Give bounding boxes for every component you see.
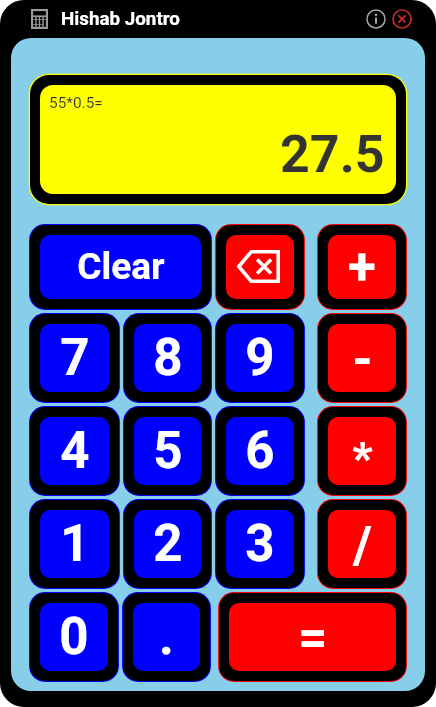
staticText: 27.5 [280, 124, 385, 185]
staticText: 8 [153, 328, 183, 388]
staticText: 6 [245, 421, 275, 481]
staticText: / [353, 516, 372, 576]
button[interactable]: 9 [226, 324, 294, 392]
staticText: 4 [60, 421, 90, 481]
staticText: 1 [60, 514, 90, 574]
staticText: . [159, 607, 174, 667]
button[interactable]: * [328, 417, 396, 485]
button[interactable]: 0 [40, 603, 108, 671]
staticText: 55*0.5= [49, 94, 103, 112]
button[interactable]: 1 [40, 510, 109, 578]
button[interactable]: 4 [40, 417, 109, 485]
staticText: = [298, 608, 328, 668]
button[interactable]: 2 [134, 510, 201, 578]
staticText: 5 [153, 421, 183, 481]
button[interactable]: 5 [134, 417, 201, 485]
staticText: Clear [77, 245, 165, 288]
button[interactable]: + [328, 235, 396, 299]
button[interactable]: / [328, 510, 396, 578]
staticText: 0 [59, 607, 89, 667]
staticText: + [348, 237, 376, 297]
staticText: Hishab Jontro [61, 8, 180, 30]
button[interactable]: = [229, 603, 396, 671]
staticText: 3 [245, 514, 275, 574]
staticText: 7 [60, 328, 90, 388]
staticText: 2 [153, 514, 183, 574]
button[interactable]: 3 [226, 510, 294, 578]
button[interactable]: Info [364, 7, 388, 31]
staticText: * [352, 432, 373, 485]
button[interactable]: 7 [40, 324, 109, 392]
staticText: - [352, 330, 373, 390]
button[interactable]: Close [390, 7, 414, 31]
staticText: 9 [245, 328, 275, 388]
button[interactable]: Backspace [226, 235, 294, 299]
button[interactable]: - [328, 324, 396, 392]
button[interactable]: . [133, 603, 200, 671]
button[interactable]: 6 [226, 417, 294, 485]
button[interactable]: Clear [40, 235, 201, 299]
button[interactable]: 8 [134, 324, 201, 392]
